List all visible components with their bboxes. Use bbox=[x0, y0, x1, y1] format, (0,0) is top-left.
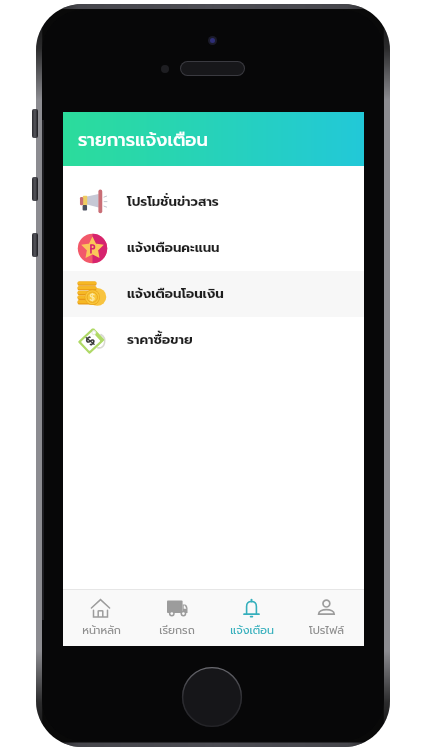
staticText: รายการแจ้งเตือน bbox=[78, 126, 208, 153]
other: Notifications bbox=[240, 597, 263, 620]
staticText: ราคาซื้อขาย bbox=[127, 330, 193, 350]
staticText: โปรโมชั่นข่าวสาร bbox=[127, 192, 219, 212]
other: Home bbox=[89, 596, 114, 621]
staticText: แจ้งเตือน bbox=[230, 622, 274, 639]
button[interactable]: ราคาซื้อขาย bbox=[63, 317, 364, 363]
button[interactable]: โปรโมชั่นข่าวสาร bbox=[63, 179, 364, 225]
other: Ride bbox=[164, 598, 189, 620]
button[interactable]: แจ้งเตือนคะแนน bbox=[63, 225, 364, 271]
other: Profile bbox=[314, 596, 339, 621]
button[interactable]: Ride bbox=[139, 590, 214, 639]
staticText: แจ้งเตือนโอนเงิน bbox=[127, 284, 224, 304]
button[interactable]: แจ้งเตือนโอนเงิน bbox=[63, 271, 364, 317]
staticText: โปรไฟล์ bbox=[309, 622, 344, 639]
staticText: แจ้งเตือนคะแนน bbox=[127, 238, 220, 258]
staticText: หน้าหลัก bbox=[82, 622, 121, 639]
button[interactable]: Home bbox=[63, 590, 139, 639]
button[interactable]: Profile bbox=[289, 590, 364, 639]
button[interactable]: Notifications bbox=[214, 590, 289, 639]
staticText: เรียกรถ bbox=[159, 622, 195, 639]
